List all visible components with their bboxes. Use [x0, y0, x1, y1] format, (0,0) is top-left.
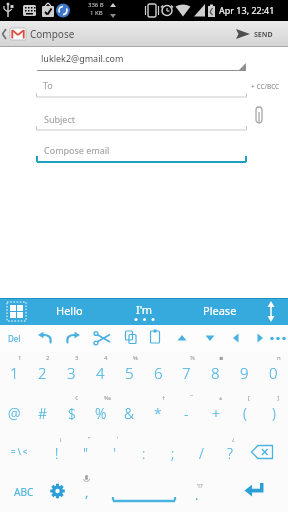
- button[interactable]: Please: [182, 298, 257, 325]
- staticText: '!?: [197, 482, 203, 490]
- staticText: -: [184, 404, 189, 423]
- button[interactable]: .: [187, 472, 216, 512]
- button[interactable]: 6: [144, 352, 172, 392]
- staticText: *: [154, 404, 162, 423]
- staticText: Compose email: [44, 144, 110, 156]
- staticText: 2: [38, 363, 47, 383]
- staticText: 6: [154, 363, 163, 383]
- button[interactable]: ABC: [0, 472, 43, 512]
- staticText: 4: [96, 363, 105, 383]
- staticText: Hello: [56, 303, 83, 318]
- button[interactable]: [43, 472, 72, 512]
- staticText: #: [38, 404, 48, 423]
- button[interactable]: [248, 325, 272, 352]
- staticText: ▪: [219, 354, 224, 361]
- button[interactable]: Hello: [32, 298, 107, 325]
- button[interactable]: @: [0, 392, 28, 432]
- staticText: ABC: [14, 485, 34, 499]
- button[interactable]: #: [28, 392, 57, 432]
- button[interactable]: [170, 325, 194, 352]
- staticText: ±: [219, 394, 223, 402]
- button[interactable]: [91, 325, 115, 352]
- button[interactable]: [216, 472, 288, 512]
- button[interactable]: &: [115, 392, 144, 432]
- staticText: 4: [104, 354, 108, 362]
- staticText: 2: [46, 354, 50, 362]
- button[interactable]: 2: [28, 352, 57, 392]
- staticText: ;: [171, 444, 175, 463]
- staticText: ’: [117, 435, 119, 443]
- staticText: ⅞: [190, 354, 195, 362]
- button[interactable]: /: [187, 432, 215, 472]
- button[interactable]: Subject: [36, 104, 247, 131]
- staticText: I'm: [136, 302, 153, 317]
- staticText: ?: [227, 444, 233, 463]
- staticText: Compose: [30, 27, 75, 41]
- button[interactable]: To: [36, 72, 247, 98]
- button[interactable]: = \ <: [0, 432, 43, 472]
- button[interactable]: *: [144, 392, 172, 432]
- staticText: SEND: [254, 30, 273, 40]
- staticText: ¡: [60, 435, 62, 443]
- staticText: 1: [10, 363, 19, 383]
- button[interactable]: ): [259, 392, 288, 432]
- button[interactable]: [257, 298, 288, 325]
- staticText: :: [142, 444, 146, 463]
- button[interactable]: SEND: [230, 21, 288, 47]
- button[interactable]: [61, 325, 85, 352]
- button[interactable]: 8: [201, 352, 230, 392]
- staticText: +: [212, 404, 220, 423]
- button[interactable]: %: [86, 392, 115, 432]
- staticText: ': [113, 444, 116, 463]
- staticText: ]: [277, 394, 279, 402]
- button[interactable]: 0: [259, 352, 288, 392]
- button[interactable]: Compose email: [36, 131, 247, 164]
- button[interactable]: ": [71, 432, 100, 472]
- button[interactable]: [245, 432, 288, 472]
- staticText: 1: [18, 354, 22, 362]
- button[interactable]: [119, 325, 143, 352]
- staticText: ": [83, 444, 89, 463]
- button[interactable]: luklek2@gmail.com: [36, 47, 247, 72]
- button[interactable]: [198, 325, 222, 352]
- button[interactable]: Del: [5, 325, 29, 352]
- button[interactable]: 4: [86, 352, 115, 392]
- button[interactable]: !: [43, 432, 71, 472]
- button[interactable]: -: [172, 392, 201, 432]
- button[interactable]: :: [129, 432, 158, 472]
- staticText: ¿: [232, 435, 235, 443]
- button[interactable]: [33, 325, 57, 352]
- button[interactable]: (: [230, 392, 259, 432]
- button[interactable]: [224, 325, 248, 352]
- staticText: = \ <: [11, 446, 28, 457]
- button[interactable]: [0, 298, 32, 325]
- button[interactable]: ?: [215, 432, 244, 472]
- staticText: To: [43, 79, 53, 91]
- button[interactable]: ': [100, 432, 129, 472]
- staticText: luklek2@gmail.com: [41, 52, 124, 64]
- button[interactable]: 7: [172, 352, 201, 392]
- button[interactable]: [266, 325, 288, 352]
- staticText: 7: [182, 363, 191, 383]
- button[interactable]: 3: [57, 352, 86, 392]
- staticText: [: [248, 394, 250, 402]
- staticText: %: [95, 404, 107, 423]
- button[interactable]: +: [201, 392, 230, 432]
- button[interactable]: $: [57, 392, 86, 432]
- button[interactable]: ,: [72, 472, 101, 512]
- staticText: †: [162, 394, 166, 402]
- staticText: Please: [203, 303, 237, 318]
- staticText: 9: [240, 363, 249, 383]
- button[interactable]: ;: [158, 432, 187, 472]
- button[interactable]: 1: [0, 352, 28, 392]
- button[interactable]: 9: [230, 352, 259, 392]
- button[interactable]: 5: [115, 352, 144, 392]
- staticText: Del: [8, 333, 21, 344]
- button[interactable]: [143, 325, 167, 352]
- staticText: @: [8, 404, 21, 423]
- button[interactable]: I'm: [107, 298, 182, 325]
- staticText: /: [199, 444, 204, 463]
- staticText: ⅝: [133, 354, 138, 362]
- staticText: Apr 13, 22:41: [219, 4, 275, 16]
- button[interactable]: [101, 472, 187, 512]
